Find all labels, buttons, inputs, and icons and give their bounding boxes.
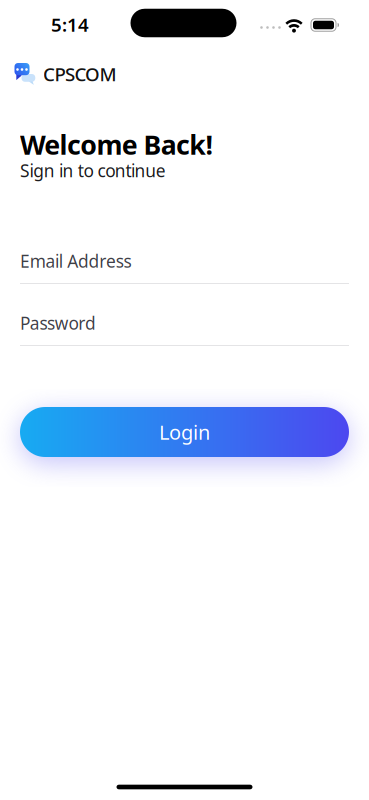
staticText: Login: [159, 419, 210, 445]
button[interactable]: Email Address: [20, 249, 349, 289]
staticText: CPSCOM: [43, 62, 116, 86]
staticText: 5:14: [51, 12, 89, 37]
staticText: Welcome Back!: [20, 127, 214, 162]
button[interactable]: Password: [20, 311, 349, 351]
staticText: Password: [20, 311, 96, 334]
staticText: Sign in to continue: [20, 159, 166, 182]
button[interactable]: Login: [20, 407, 349, 457]
staticText: Email Address: [20, 249, 131, 272]
